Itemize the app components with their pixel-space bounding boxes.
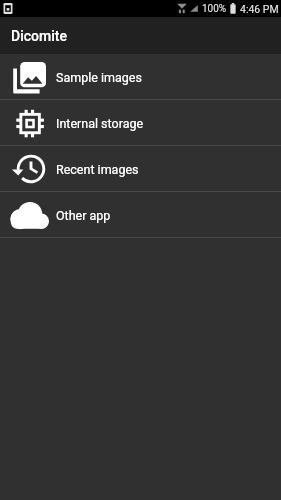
staticText: Other app	[56, 208, 111, 223]
button[interactable]: Recent images	[0, 146, 281, 191]
staticText: Internal storage	[56, 116, 144, 131]
staticText: 4:46 PM	[240, 3, 279, 15]
button[interactable]: Other app	[0, 192, 281, 237]
staticText: Recent images	[56, 162, 139, 177]
staticText: Sample images	[56, 70, 142, 85]
staticText: 100%	[202, 3, 227, 15]
button[interactable]: Sample images	[0, 54, 281, 99]
button[interactable]: Internal storage	[0, 100, 281, 145]
staticText: Dicomite	[11, 28, 67, 44]
